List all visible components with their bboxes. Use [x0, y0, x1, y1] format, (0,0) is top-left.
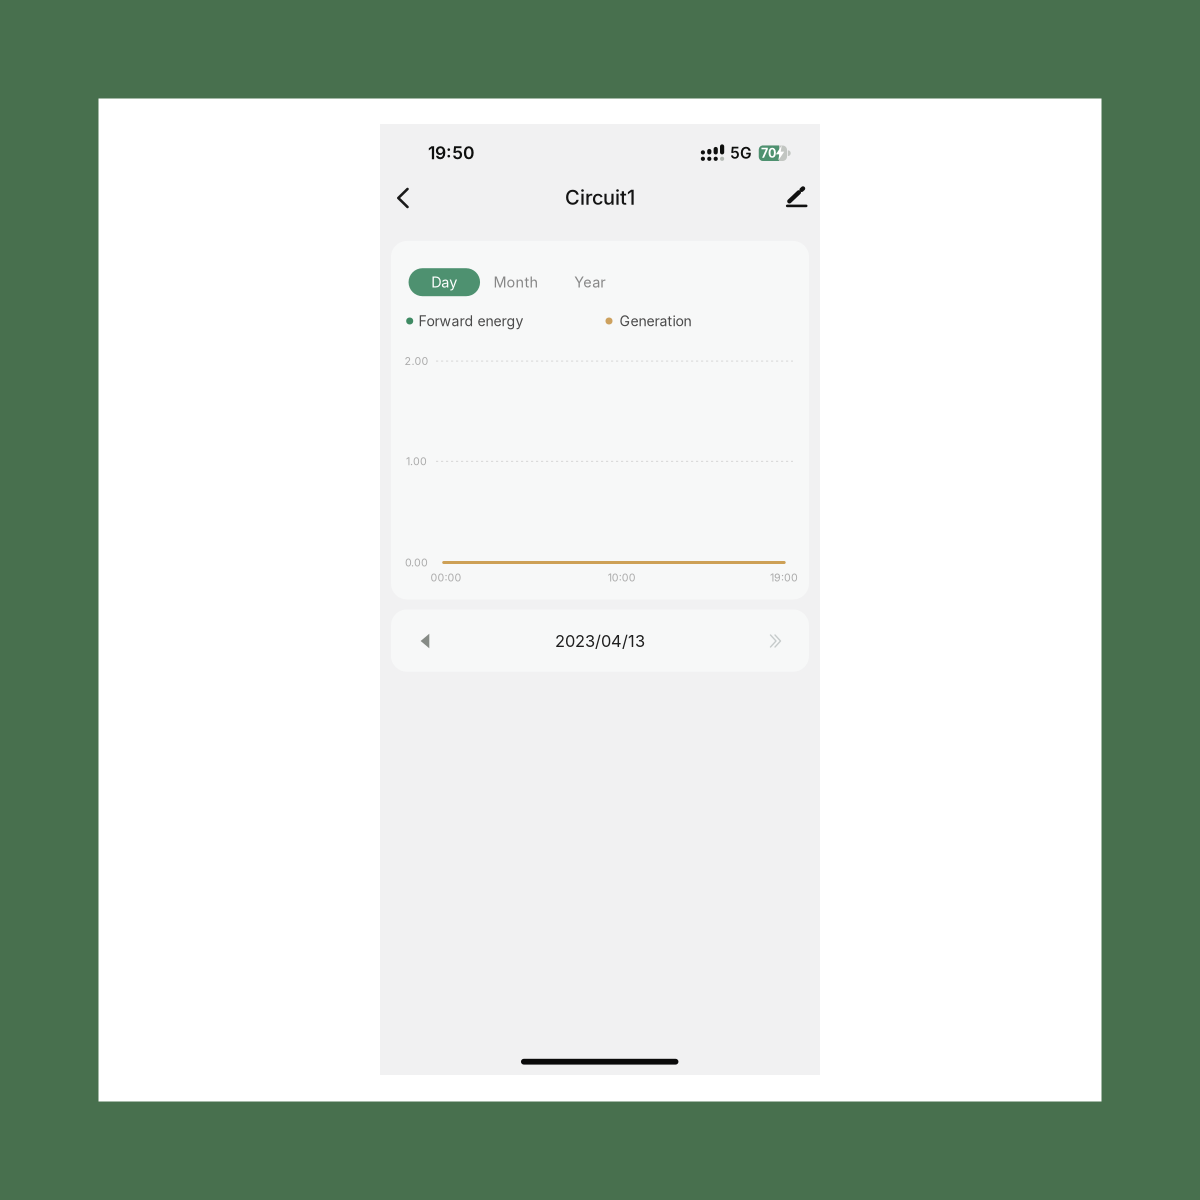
staticText: 1.00	[406, 455, 427, 468]
staticText: Month	[493, 273, 538, 291]
staticText: Year	[574, 273, 605, 291]
button[interactable]: Year	[562, 268, 618, 296]
staticText: 00:00	[430, 571, 461, 584]
staticText: Day	[431, 273, 457, 291]
staticText: 5G	[730, 144, 752, 163]
button[interactable]: Previous day	[413, 630, 437, 652]
staticText: 2023/04/13	[555, 631, 645, 651]
button[interactable]: Edit	[786, 185, 807, 209]
staticText: 0.00	[405, 556, 428, 569]
button[interactable]: Next day	[767, 631, 783, 651]
staticText: 19:50	[428, 142, 475, 164]
staticText: 10:00	[608, 571, 636, 584]
button[interactable]: Month	[481, 268, 551, 296]
staticText: Generation	[620, 312, 692, 330]
button[interactable]: Back	[391, 186, 415, 210]
staticText: 19:00	[770, 571, 798, 584]
staticText: 70	[761, 146, 776, 161]
button[interactable]: Day	[409, 268, 480, 296]
staticText: Circuit1	[565, 185, 635, 210]
staticText: Forward energy	[418, 312, 523, 330]
staticText: 2.00	[404, 354, 428, 367]
